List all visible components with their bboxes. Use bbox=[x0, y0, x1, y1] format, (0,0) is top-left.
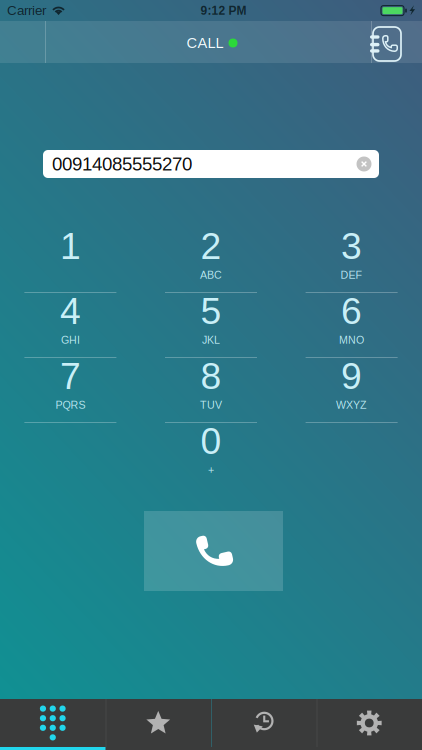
staticText: PQRS bbox=[55, 399, 85, 411]
button[interactable]: 3 bbox=[281, 228, 422, 293]
button[interactable]: 6 bbox=[281, 293, 422, 358]
staticText: + bbox=[208, 464, 214, 476]
staticText: 3 bbox=[341, 225, 362, 267]
staticText: ABC bbox=[200, 269, 222, 281]
button[interactable]: Keypad bbox=[0, 699, 105, 747]
staticText: 6 bbox=[341, 290, 362, 332]
button[interactable]: 9 bbox=[281, 358, 422, 423]
staticText: JKL bbox=[202, 334, 220, 346]
staticText: 8 bbox=[200, 355, 221, 397]
staticText: GHI bbox=[61, 334, 80, 346]
staticText: 7 bbox=[60, 355, 81, 397]
button[interactable]: Contacts bbox=[361, 24, 411, 66]
staticText: 2 bbox=[200, 225, 221, 267]
button[interactable]: 7 bbox=[0, 358, 141, 423]
staticText: Carrier bbox=[7, 3, 46, 18]
staticText: 4 bbox=[60, 290, 81, 332]
button[interactable]: Recents bbox=[211, 699, 316, 747]
staticText: WXYZ bbox=[336, 399, 367, 411]
staticText: DEF bbox=[341, 269, 363, 281]
staticText: TUV bbox=[200, 399, 222, 411]
button[interactable]: 4 bbox=[0, 293, 141, 358]
button[interactable]: 2 bbox=[141, 228, 281, 293]
button[interactable]: 8 bbox=[141, 358, 281, 423]
staticText: 00914085555270 bbox=[52, 154, 192, 174]
button[interactable]: 5 bbox=[141, 293, 281, 358]
staticText: 1 bbox=[60, 225, 81, 267]
staticText: 9:12 PM bbox=[200, 4, 246, 17]
button[interactable]: 0 bbox=[141, 423, 281, 488]
button[interactable]: 1 bbox=[0, 228, 141, 293]
button[interactable]: Call bbox=[144, 511, 283, 591]
staticText: 5 bbox=[200, 290, 221, 332]
staticText: 9 bbox=[341, 355, 362, 397]
staticText: CALL bbox=[186, 35, 223, 51]
button[interactable]: Settings bbox=[316, 699, 422, 747]
staticText: MNO bbox=[339, 334, 364, 346]
button[interactable]: Clear text bbox=[351, 151, 377, 177]
button[interactable]: Favourites bbox=[105, 699, 211, 747]
staticText: 0 bbox=[200, 420, 221, 462]
